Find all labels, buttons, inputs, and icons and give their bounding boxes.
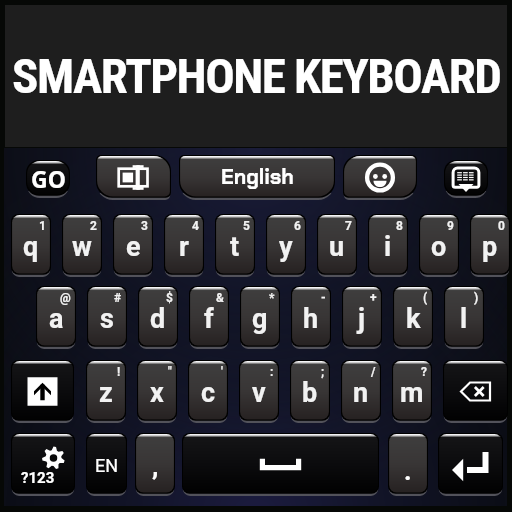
staticText: / bbox=[371, 365, 376, 379]
staticText: # bbox=[114, 291, 122, 305]
staticText: e bbox=[126, 231, 141, 263]
button[interactable]: + bbox=[342, 286, 382, 349]
staticText: k bbox=[406, 303, 421, 335]
staticText: ) bbox=[474, 291, 479, 305]
button[interactable]: Emoji bbox=[343, 155, 417, 200]
button[interactable]: ! bbox=[86, 360, 126, 423]
staticText: EN bbox=[95, 455, 119, 476]
staticText: ; bbox=[321, 365, 325, 379]
button[interactable]: 6 bbox=[266, 214, 306, 277]
staticText: m bbox=[400, 377, 424, 409]
staticText: j bbox=[358, 303, 366, 335]
staticText: d bbox=[150, 303, 166, 335]
staticText: 2 bbox=[90, 219, 97, 233]
button[interactable]: Space bbox=[182, 433, 379, 496]
button[interactable]: / bbox=[341, 360, 381, 423]
staticText: - bbox=[321, 291, 326, 305]
staticText: v bbox=[252, 377, 266, 409]
button[interactable]: 9 bbox=[419, 214, 459, 277]
button[interactable]: Backspace bbox=[443, 360, 508, 423]
staticText: q bbox=[23, 231, 39, 263]
button[interactable]: ' bbox=[188, 360, 228, 423]
button[interactable]: 2 bbox=[62, 214, 102, 277]
staticText: @ bbox=[60, 291, 71, 305]
staticText: ' bbox=[221, 365, 223, 379]
button[interactable]: Enter bbox=[438, 433, 503, 496]
button[interactable]: : bbox=[239, 360, 279, 423]
staticText: i bbox=[384, 231, 392, 263]
staticText: ? bbox=[421, 365, 427, 379]
staticText: n bbox=[353, 377, 369, 409]
staticText: 9 bbox=[447, 219, 454, 233]
button[interactable]: 0 bbox=[470, 214, 510, 277]
button[interactable]: 3 bbox=[113, 214, 153, 277]
staticText: l bbox=[460, 303, 468, 335]
staticText: f bbox=[204, 303, 214, 335]
staticText: * bbox=[269, 291, 275, 305]
staticText: b bbox=[302, 377, 318, 409]
button[interactable]: Hide keyboard bbox=[444, 160, 488, 198]
staticText: 6 bbox=[294, 219, 301, 233]
staticText: 8 bbox=[396, 219, 403, 233]
button[interactable]: English bbox=[179, 155, 335, 200]
button[interactable]: Go bbox=[26, 160, 70, 198]
staticText: 5 bbox=[243, 219, 250, 233]
button[interactable]: 4 bbox=[164, 214, 204, 277]
staticText: w bbox=[72, 231, 92, 263]
button[interactable]: 7 bbox=[317, 214, 357, 277]
staticText: " bbox=[168, 365, 172, 379]
button[interactable]: ) bbox=[444, 286, 484, 349]
button[interactable]: 5 bbox=[215, 214, 255, 277]
staticText: ! bbox=[117, 365, 121, 379]
button[interactable]: Symbols bbox=[11, 433, 75, 496]
staticText: + bbox=[370, 291, 377, 305]
staticText: r bbox=[179, 231, 189, 263]
staticText: GO bbox=[31, 163, 66, 194]
staticText: ( bbox=[423, 291, 428, 305]
button[interactable]: Language bbox=[86, 433, 127, 496]
button[interactable]: . bbox=[388, 433, 428, 496]
staticText: h bbox=[303, 303, 319, 335]
staticText: t bbox=[230, 231, 240, 263]
button[interactable]: " bbox=[137, 360, 177, 423]
button[interactable]: * bbox=[240, 286, 280, 349]
staticText: a bbox=[49, 303, 64, 335]
button[interactable]: & bbox=[189, 286, 229, 349]
button[interactable]: - bbox=[291, 286, 331, 349]
staticText: & bbox=[216, 291, 224, 305]
staticText: 1 bbox=[39, 219, 46, 233]
button[interactable]: $ bbox=[138, 286, 178, 349]
button[interactable]: 1 bbox=[11, 214, 51, 277]
staticText: . bbox=[404, 456, 412, 486]
staticText: z bbox=[99, 377, 113, 409]
staticText: $ bbox=[166, 291, 173, 305]
staticText: p bbox=[482, 231, 498, 263]
staticText: u bbox=[329, 231, 345, 263]
button[interactable]: Input method bbox=[96, 155, 171, 200]
button[interactable]: Shift bbox=[11, 360, 74, 423]
staticText: SMARTPHONE KEYBOARD bbox=[12, 48, 501, 105]
staticText: x bbox=[150, 377, 164, 409]
button[interactable]: ( bbox=[393, 286, 433, 349]
button[interactable]: ; bbox=[290, 360, 330, 423]
staticText: g bbox=[252, 303, 268, 335]
button[interactable]: # bbox=[87, 286, 127, 349]
button[interactable]: , bbox=[135, 433, 175, 496]
staticText: 3 bbox=[141, 219, 148, 233]
staticText: o bbox=[431, 231, 447, 263]
staticText: ?123 bbox=[21, 469, 55, 487]
staticText: , bbox=[152, 451, 159, 481]
staticText: c bbox=[201, 377, 216, 409]
button[interactable]: ? bbox=[392, 360, 432, 423]
button[interactable]: 8 bbox=[368, 214, 408, 277]
staticText: y bbox=[279, 231, 293, 263]
button[interactable]: @ bbox=[36, 286, 76, 349]
staticText: English bbox=[221, 163, 294, 190]
staticText: s bbox=[100, 303, 114, 335]
staticText: 7 bbox=[345, 219, 352, 233]
staticText: : bbox=[270, 365, 274, 379]
staticText: 4 bbox=[192, 219, 199, 233]
staticText: 0 bbox=[498, 219, 505, 233]
